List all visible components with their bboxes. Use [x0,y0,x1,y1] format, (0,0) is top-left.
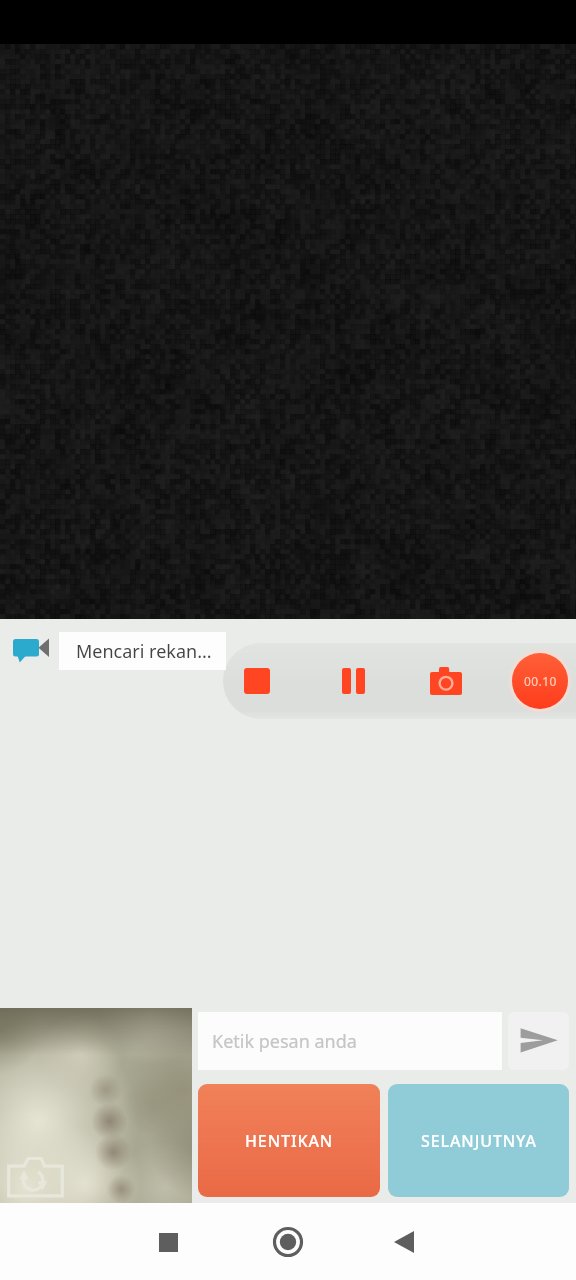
button[interactable]: HENTIKAN [198,1084,380,1197]
staticText: Ketik pesan anda [212,1029,357,1054]
staticText: HENTIKAN [245,1130,334,1152]
staticText: SELANJUTNYA [421,1130,537,1152]
button[interactable]: Stop [231,655,283,707]
button[interactable]: Recents [136,1210,200,1274]
button[interactable]: Pause [327,655,379,707]
staticText: 00.10 [524,673,557,689]
button[interactable]: Video chat [8,632,56,670]
button[interactable]: SELANJUTNYA [388,1084,569,1197]
staticText: Mencari rekan... [76,639,212,664]
button[interactable]: Switch camera [7,1156,64,1198]
button[interactable]: Camera [420,655,472,707]
button[interactable]: Back [372,1210,436,1274]
button[interactable]: Ketik pesan anda [198,1012,502,1070]
button[interactable]: Recording timer 00.10 [509,650,571,712]
button[interactable]: Home [256,1210,320,1274]
button[interactable]: Mencari rekan... [59,632,226,670]
button[interactable]: Remote video [0,0,576,619]
button[interactable]: Send [508,1012,569,1070]
button[interactable]: Local camera preview [0,1008,192,1203]
